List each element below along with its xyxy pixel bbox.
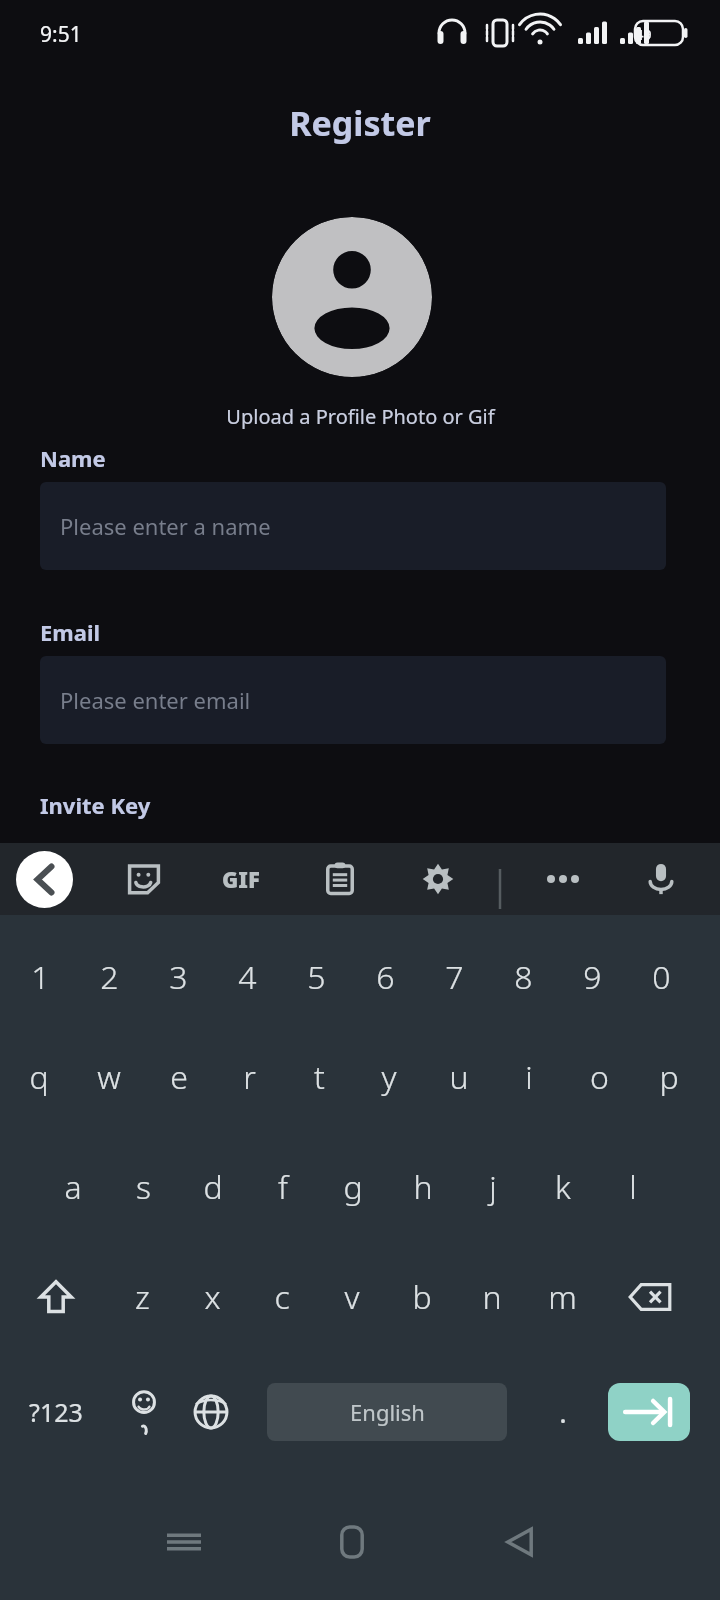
button[interactable]: u — [429, 1053, 489, 1101]
button[interactable]: Change language — [181, 1383, 241, 1441]
button[interactable]: Enter — [608, 1383, 690, 1441]
staticText: j — [489, 1165, 497, 1209]
staticText: x — [204, 1275, 221, 1319]
staticText: s — [136, 1165, 151, 1209]
button[interactable]: p — [639, 1053, 699, 1101]
staticText: w — [97, 1055, 121, 1099]
button[interactable]: v — [322, 1273, 382, 1321]
staticText: o — [590, 1055, 609, 1099]
button[interactable]: c — [252, 1273, 312, 1321]
button[interactable]: GIF — [213, 843, 269, 915]
button[interactable]: s — [113, 1163, 173, 1211]
staticText: Please enter email — [60, 685, 251, 715]
button[interactable]: e — [149, 1053, 209, 1101]
staticText: n — [482, 1275, 502, 1319]
staticText: y — [381, 1055, 397, 1099]
button[interactable]: Close keyboard toolbar — [16, 851, 73, 908]
button[interactable]: 1 — [10, 953, 70, 1001]
staticText: p — [659, 1055, 679, 1099]
button[interactable]: Backspace — [620, 1273, 680, 1321]
button[interactable]: Shift — [26, 1273, 86, 1321]
staticText: 9:51 — [40, 20, 82, 49]
staticText: b — [412, 1275, 432, 1319]
button[interactable]: x — [182, 1273, 242, 1321]
button[interactable]: 5 — [286, 953, 346, 1001]
staticText: g — [343, 1165, 363, 1209]
staticText: 4 — [238, 955, 257, 999]
button[interactable]: 0 — [631, 953, 691, 1001]
staticText: h — [413, 1165, 433, 1209]
staticText: 3 — [169, 955, 188, 999]
button[interactable]: f — [253, 1163, 313, 1211]
button[interactable]: t — [289, 1053, 349, 1101]
button[interactable]: a — [43, 1163, 103, 1211]
staticText: a — [64, 1165, 82, 1209]
button[interactable]: l — [603, 1163, 663, 1211]
button[interactable]: Please enter email — [40, 656, 666, 744]
button[interactable]: z — [112, 1273, 172, 1321]
staticText: r — [243, 1055, 256, 1099]
staticText: Name — [40, 443, 106, 473]
button[interactable]: More options — [535, 843, 591, 915]
staticText: i — [525, 1055, 533, 1099]
staticText: 1 — [31, 955, 50, 999]
staticText: u — [449, 1055, 469, 1099]
button[interactable]: r — [219, 1053, 279, 1101]
button[interactable]: j — [463, 1163, 523, 1211]
button[interactable]: ?123 — [14, 1383, 98, 1441]
staticText: e — [170, 1055, 188, 1099]
staticText: . — [559, 1393, 567, 1431]
button[interactable]: h — [393, 1163, 453, 1211]
button[interactable]: 3 — [148, 953, 208, 1001]
staticText: q — [29, 1055, 49, 1099]
staticText: Register — [289, 100, 431, 146]
button[interactable]: i — [499, 1053, 559, 1101]
staticText: k — [555, 1165, 571, 1209]
button[interactable]: g — [323, 1163, 383, 1211]
staticText: 7 — [445, 955, 464, 999]
button[interactable]: q — [9, 1053, 69, 1101]
staticText: 49 — [635, 25, 652, 44]
button[interactable]: w — [79, 1053, 139, 1101]
staticText: Please enter a name — [60, 511, 271, 541]
button[interactable]: Stickers — [116, 843, 172, 915]
staticText: 5 — [307, 955, 326, 999]
button[interactable]: Keyboard settings — [410, 843, 466, 915]
button[interactable]: . — [533, 1383, 593, 1441]
staticText: ?123 — [29, 1395, 83, 1429]
button[interactable]: Clipboard — [312, 843, 368, 915]
staticText: 6 — [376, 955, 395, 999]
button[interactable]: Please enter a name — [40, 482, 666, 570]
button[interactable]: 4 — [217, 953, 277, 1001]
button[interactable]: Emoji — [113, 1377, 175, 1447]
button[interactable]: 7 — [424, 953, 484, 1001]
staticText: Upload a Profile Photo or Gif — [226, 403, 495, 430]
staticText: Invite Key — [40, 790, 151, 820]
button[interactable]: n — [462, 1273, 522, 1321]
button[interactable]: o — [569, 1053, 629, 1101]
button[interactable]: k — [533, 1163, 593, 1211]
button[interactable]: m — [532, 1273, 592, 1321]
staticText: 9 — [583, 955, 602, 999]
button[interactable]: d — [183, 1163, 243, 1211]
staticText: l — [629, 1165, 637, 1209]
button[interactable]: 2 — [79, 953, 139, 1001]
staticText: f — [278, 1165, 288, 1209]
button[interactable]: Voice input — [633, 843, 689, 915]
button[interactable]: 6 — [355, 953, 415, 1001]
staticText: 0 — [652, 955, 671, 999]
button[interactable]: y — [359, 1053, 419, 1101]
button[interactable]: Recent apps — [152, 1510, 216, 1574]
staticText: 2 — [100, 955, 119, 999]
staticText: z — [135, 1275, 150, 1319]
staticText: 8 — [514, 955, 533, 999]
staticText: Email — [40, 617, 101, 647]
button[interactable]: Back — [488, 1510, 552, 1574]
button[interactable]: b — [392, 1273, 452, 1321]
button[interactable]: English — [267, 1383, 507, 1441]
button[interactable]: Home — [320, 1510, 384, 1574]
button[interactable]: 8 — [493, 953, 553, 1001]
staticText: t — [314, 1055, 325, 1099]
button[interactable]: Upload a profile photo — [272, 217, 432, 377]
button[interactable]: 9 — [562, 953, 622, 1001]
